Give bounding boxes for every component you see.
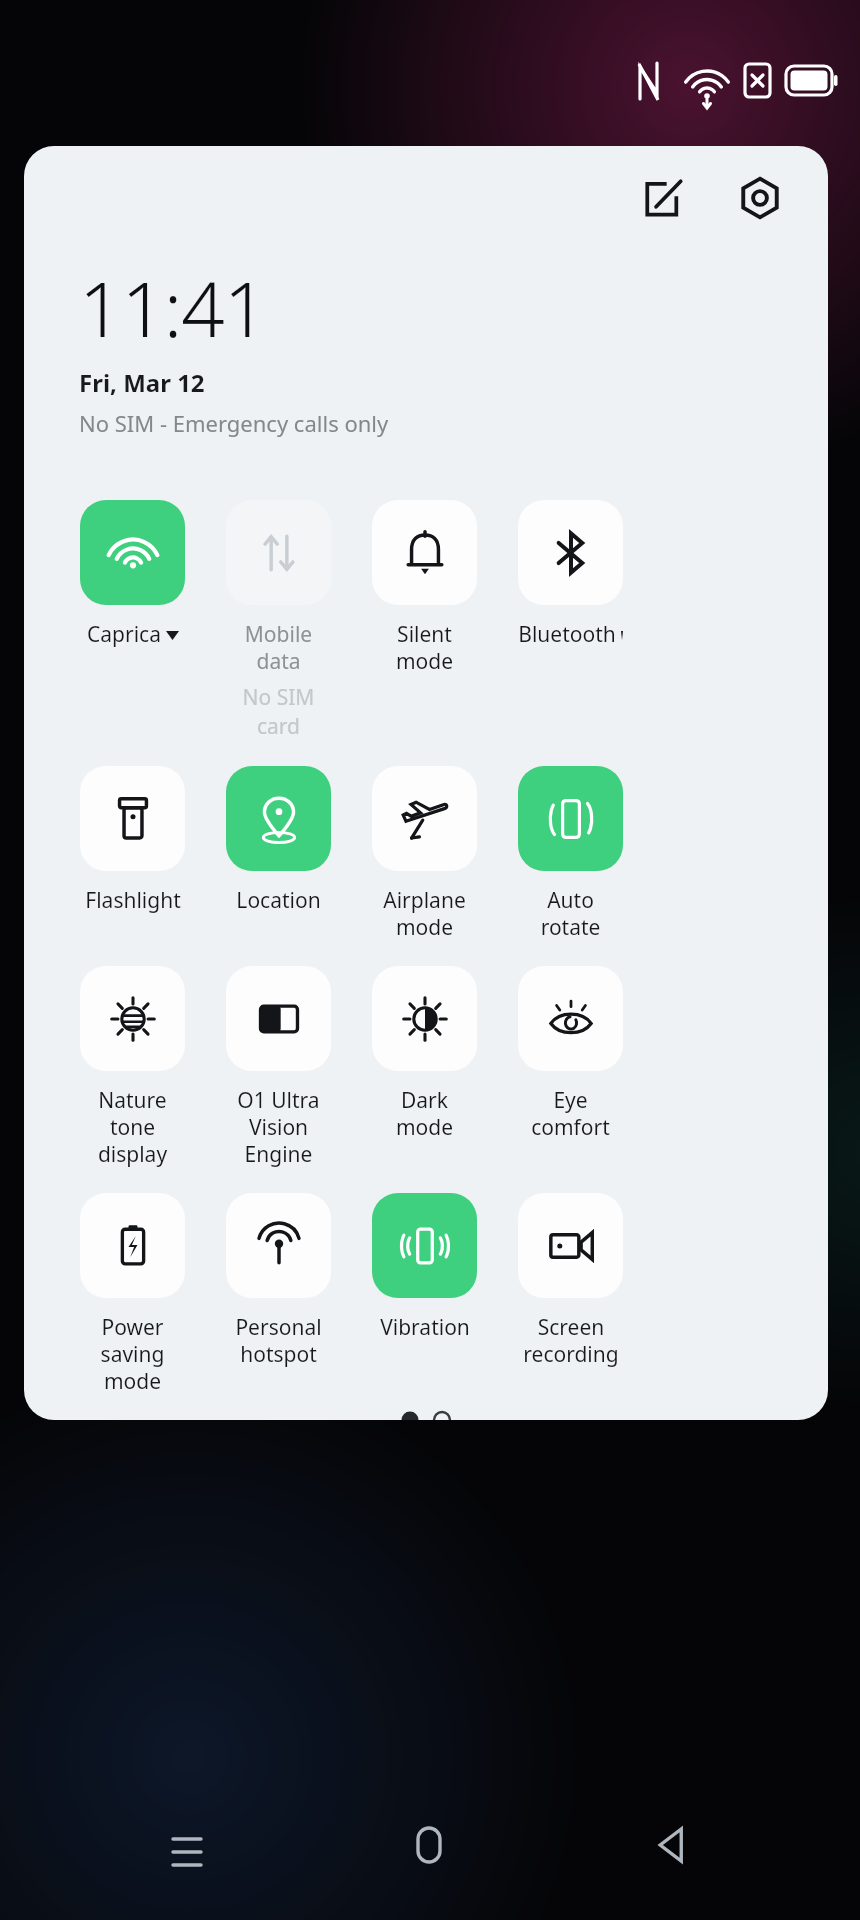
staticText: Dark mode — [372, 1086, 477, 1141]
staticText: Bluetooth — [518, 620, 616, 649]
button[interactable]: Caprica — [80, 500, 185, 649]
button[interactable]: Home — [374, 1790, 484, 1900]
button[interactable]: Back — [617, 1790, 727, 1900]
staticText: Flashlight — [85, 886, 181, 915]
staticText: Location — [236, 886, 321, 915]
staticText: Power saving mode — [80, 1313, 185, 1395]
staticText: Fri, Mar 12 — [79, 366, 205, 399]
staticText: No SIM - Emergency calls only — [79, 408, 389, 438]
button[interactable]: Dark mode — [372, 966, 477, 1141]
staticText: Airplane mode — [372, 886, 477, 941]
button[interactable]: Nature tone display — [80, 966, 185, 1168]
button[interactable]: Power saving mode — [80, 1193, 185, 1395]
staticText: Mobile data — [226, 620, 331, 675]
staticText: Caprica — [87, 620, 161, 649]
button[interactable]: Recent apps — [132, 1790, 242, 1900]
button[interactable]: Auto rotate — [518, 766, 623, 941]
button[interactable]: Personal hotspot — [226, 1193, 331, 1368]
staticText: Nature tone display — [80, 1086, 185, 1168]
button[interactable]: Edit quick settings — [626, 160, 702, 236]
button[interactable]: Location — [226, 766, 331, 915]
staticText: Silent mode — [372, 620, 477, 675]
button[interactable]: Eye comfort — [518, 966, 623, 1141]
staticText: Auto rotate — [518, 886, 623, 941]
staticText: Eye comfort — [518, 1086, 623, 1141]
staticText: O1 Ultra Vision Engine — [226, 1086, 331, 1168]
button[interactable]: Silent mode — [372, 500, 477, 675]
staticText: Personal hotspot — [235, 1313, 322, 1368]
button[interactable]: Bluetooth — [518, 500, 623, 649]
button[interactable]: Mobile data — [226, 500, 331, 741]
staticText: 11:41 — [79, 256, 267, 360]
staticText: Screen recording — [523, 1313, 619, 1368]
staticText: No SIM card — [226, 683, 331, 741]
button[interactable]: Flashlight — [80, 766, 185, 915]
staticText: Vibration — [380, 1313, 470, 1342]
button[interactable]: Vibration — [372, 1193, 477, 1342]
button[interactable]: Airplane mode — [372, 766, 477, 941]
button[interactable]: O1 Ultra Vision Engine — [226, 966, 331, 1168]
button[interactable]: Screen recording — [518, 1193, 623, 1368]
button[interactable]: Settings — [722, 160, 798, 236]
